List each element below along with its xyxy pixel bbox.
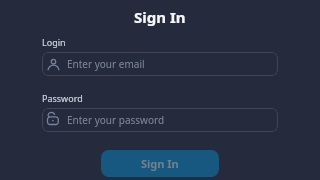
staticText: Sign In [141, 156, 179, 171]
staticText: Enter your email [67, 57, 145, 71]
staticText: Sign In [134, 7, 186, 27]
staticText: Password [42, 92, 83, 104]
staticText: Enter your password [67, 113, 165, 127]
staticText: Login [42, 36, 66, 48]
button[interactable]: Enter your email [42, 52, 278, 76]
button[interactable]: Enter your password [42, 108, 278, 132]
button[interactable]: Sign In [101, 150, 219, 177]
